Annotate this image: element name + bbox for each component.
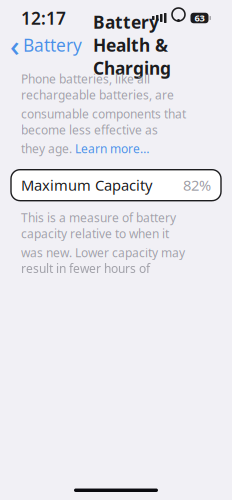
button[interactable]: Optimised Battery Charging xyxy=(11,482,221,500)
staticText: 63 xyxy=(194,12,204,24)
staticText: consumable components that become less e… xyxy=(21,106,186,138)
staticText: This is a measure of battery capacity re… xyxy=(21,210,176,242)
staticText: was new. Lower capacity may result in fe… xyxy=(21,244,185,276)
staticText: Maximum Capacity xyxy=(21,175,152,195)
staticText: they age. xyxy=(21,141,72,157)
staticText: Phone batteries, like all rechargeable b… xyxy=(21,71,174,103)
button[interactable]: Maximum Capacity xyxy=(11,170,221,201)
staticText: ‹ xyxy=(10,25,20,64)
button[interactable]: Learn more… xyxy=(75,141,149,157)
staticText: Learn more… xyxy=(75,141,149,157)
staticText: Battery Health & Charging xyxy=(93,10,171,80)
staticText: 12:17 xyxy=(21,6,66,29)
staticText: Battery xyxy=(23,33,82,56)
staticText: 82% xyxy=(183,175,211,195)
staticText: Optimised Battery Charging xyxy=(21,478,145,500)
button[interactable]: ‹ xyxy=(8,22,84,67)
